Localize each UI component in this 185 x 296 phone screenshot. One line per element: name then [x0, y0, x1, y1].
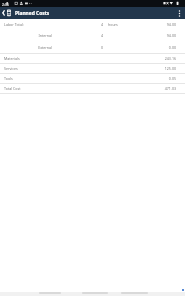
button[interactable]: Total Cost — [0, 83, 185, 93]
button[interactable]: Tools — [0, 73, 185, 83]
staticText: 2:36 — [2, 2, 9, 7]
staticText: Labor Total: — [4, 22, 64, 27]
staticText: Services — [4, 66, 18, 71]
staticText: 4 — [92, 33, 103, 38]
staticText: Planned Costs — [15, 10, 50, 17]
staticText: Total Cost — [4, 86, 21, 91]
staticText: 471.03 — [140, 86, 176, 91]
button[interactable]: Services — [0, 63, 185, 73]
button[interactable]: Materials — [0, 53, 185, 63]
staticText: hours — [108, 22, 128, 27]
staticText: 243.16 — [140, 56, 176, 61]
staticText: 0.05 — [140, 76, 176, 81]
staticText: Materials — [4, 56, 20, 61]
staticText: 4 — [92, 22, 103, 27]
staticText: 125.00 — [140, 66, 176, 71]
staticText: 94.00 — [140, 33, 176, 38]
staticText: Internal — [20, 33, 52, 38]
staticText: 94.00 — [140, 22, 176, 27]
staticText: Tools — [4, 76, 13, 81]
staticText: External — [20, 45, 52, 50]
staticText: 0.00 — [140, 45, 176, 50]
button[interactable]: Navigate up — [0, 7, 7, 19]
button[interactable]: More options — [174, 7, 184, 19]
staticText: 0 — [92, 45, 103, 50]
